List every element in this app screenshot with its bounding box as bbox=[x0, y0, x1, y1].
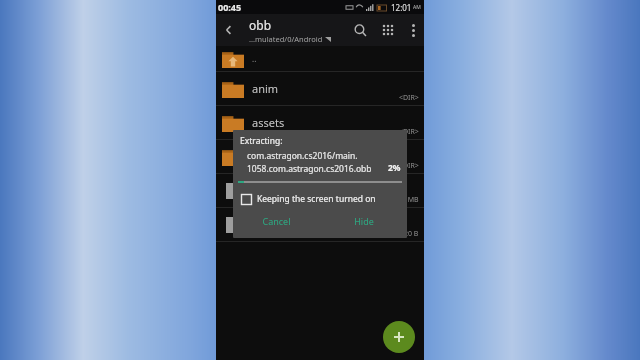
button[interactable]: Keeping the screen turned on bbox=[241, 193, 407, 205]
button[interactable]: config.cfg bbox=[216, 208, 424, 242]
staticText: .. bbox=[252, 53, 257, 64]
button[interactable]: Add bbox=[383, 321, 415, 353]
button[interactable]: Back bbox=[216, 14, 242, 46]
staticText: classes.dex bbox=[252, 183, 310, 198]
staticText: ...mulated/0/Android bbox=[249, 34, 323, 44]
staticText: 20 B bbox=[404, 229, 419, 239]
staticText: com.astragon.cs2016/main. bbox=[247, 150, 358, 162]
button[interactable]: anim bbox=[216, 72, 424, 106]
staticText: bin bbox=[252, 149, 269, 164]
button[interactable]: .. bbox=[216, 46, 424, 72]
button[interactable]: Cancel bbox=[233, 208, 320, 234]
staticText: 00:45 bbox=[218, 1, 242, 13]
staticText: obb bbox=[249, 17, 272, 33]
staticText: AM bbox=[413, 4, 421, 11]
staticText: 2% bbox=[388, 162, 401, 174]
staticText: anim bbox=[252, 81, 279, 96]
staticText: config.cfg bbox=[252, 217, 303, 232]
staticText: <DIR> bbox=[399, 93, 419, 103]
staticText: <DIR> bbox=[399, 161, 419, 171]
button[interactable]: View mode bbox=[374, 14, 402, 46]
staticText: Hide bbox=[354, 215, 374, 227]
button[interactable]: Search bbox=[346, 14, 374, 46]
button[interactable]: More options bbox=[402, 14, 424, 46]
staticText: Extracting: bbox=[240, 135, 283, 147]
staticText: Cancel bbox=[262, 215, 291, 227]
staticText: Keeping the screen turned on bbox=[257, 193, 376, 205]
button[interactable]: classes.dex bbox=[216, 174, 424, 208]
staticText: assets bbox=[252, 115, 285, 130]
button[interactable]: Hide bbox=[320, 208, 407, 234]
button[interactable]: bin bbox=[216, 140, 424, 174]
button[interactable]: assets bbox=[216, 106, 424, 140]
staticText: <DIR> bbox=[399, 127, 419, 137]
staticText: 1.2 MB bbox=[396, 195, 419, 205]
staticText: 12:01 bbox=[391, 2, 412, 13]
staticText: 1058.com.astragon.cs2016.obb bbox=[247, 163, 372, 175]
